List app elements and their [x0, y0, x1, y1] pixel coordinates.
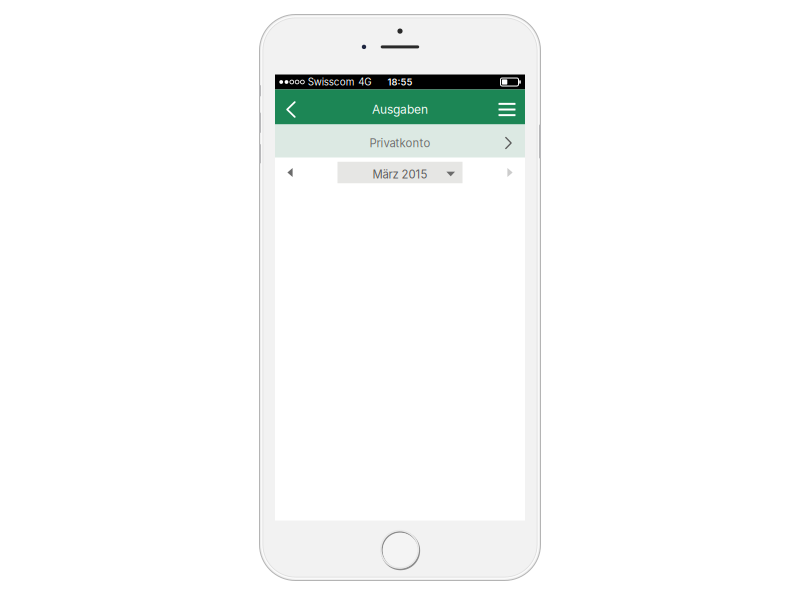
- staticText: Swisscom: [308, 76, 355, 88]
- staticText: 4G: [358, 76, 371, 88]
- button[interactable]: Menu: [489, 92, 525, 127]
- button[interactable]: Back: [275, 92, 306, 127]
- staticText: Privatkonto: [369, 136, 430, 150]
- button[interactable]: Privatkonto: [275, 124, 525, 157]
- button[interactable]: Next month: [495, 159, 525, 185]
- staticText: März 2015: [372, 168, 427, 181]
- staticText: Ausgaben: [372, 102, 428, 117]
- staticText: 18:55: [387, 76, 412, 88]
- button[interactable]: März 2015: [337, 162, 462, 183]
- button[interactable]: Previous month: [275, 159, 305, 185]
